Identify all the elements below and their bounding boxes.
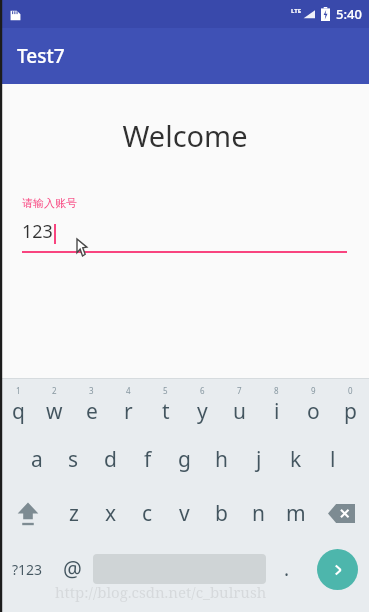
button[interactable]: 1	[0, 382, 36, 429]
staticText: e	[86, 397, 98, 426]
button[interactable]: 3	[73, 382, 110, 429]
button[interactable]: z	[55, 490, 92, 537]
button[interactable]: j	[240, 436, 277, 483]
button[interactable]: g	[166, 436, 203, 483]
staticText: 5	[163, 385, 168, 396]
button[interactable]: Enter	[317, 549, 358, 590]
button[interactable]: c	[129, 490, 166, 537]
staticText: s	[68, 445, 79, 474]
staticText: n	[252, 499, 265, 528]
staticText: 7	[237, 385, 242, 396]
staticText: .	[284, 556, 290, 582]
staticText: u	[233, 397, 246, 426]
staticText: t	[162, 397, 170, 426]
staticText: b	[215, 499, 228, 528]
staticText: d	[104, 445, 117, 474]
staticText: http://blog.csdn.net/c_bulrush	[55, 582, 267, 602]
staticText: r	[124, 397, 133, 426]
staticText: 4	[126, 385, 131, 396]
staticText: i	[274, 397, 280, 426]
button[interactable]: n	[240, 490, 277, 537]
button[interactable]: h	[203, 436, 240, 483]
staticText: z	[69, 499, 79, 528]
staticText: o	[307, 397, 320, 426]
button[interactable]: 7	[221, 382, 258, 429]
staticText: k	[290, 445, 302, 474]
button[interactable]: 4	[110, 382, 147, 429]
staticText: 1	[16, 385, 21, 396]
button[interactable]: 请输入账号	[22, 196, 347, 253]
staticText: m	[286, 499, 306, 528]
button[interactable]: Backspace	[314, 490, 369, 537]
button[interactable]: 5	[147, 382, 184, 429]
button[interactable]: Test7	[0, 28, 369, 84]
button[interactable]: s	[55, 436, 92, 483]
staticText: w	[46, 397, 63, 426]
staticText: 9	[311, 385, 316, 396]
staticText: 6	[200, 385, 205, 396]
button[interactable]: b	[203, 490, 240, 537]
button[interactable]: a	[18, 436, 55, 483]
staticText: a	[31, 445, 43, 474]
staticText: c	[142, 499, 153, 528]
button[interactable]: .	[269, 544, 305, 594]
staticText: LTE	[291, 7, 302, 15]
staticText: 3	[89, 385, 94, 396]
staticText: 请输入账号	[22, 196, 77, 210]
button[interactable]: 8	[258, 382, 295, 429]
button[interactable]: v	[166, 490, 203, 537]
staticText: ?123	[12, 560, 43, 579]
staticText: 5:40	[336, 5, 362, 23]
staticText: j	[256, 445, 262, 474]
staticText: 123	[22, 219, 53, 244]
button[interactable]: x	[92, 490, 129, 537]
button[interactable]: d	[92, 436, 129, 483]
button[interactable]: 0	[332, 382, 369, 429]
button[interactable]: Shift	[0, 490, 55, 537]
staticText: 0	[348, 385, 353, 396]
button[interactable]: 6	[184, 382, 221, 429]
staticText: g	[178, 445, 191, 474]
staticText: p	[344, 397, 357, 426]
staticText: h	[215, 445, 228, 474]
staticText: x	[105, 499, 117, 528]
staticText: 2	[52, 385, 57, 396]
button[interactable]: ?123	[0, 544, 54, 594]
staticText: Test7	[17, 43, 65, 69]
button[interactable]: f	[129, 436, 166, 483]
staticText: 8	[274, 385, 279, 396]
staticText: l	[330, 445, 336, 474]
button[interactable]: @	[54, 544, 90, 594]
button[interactable]: m	[277, 490, 314, 537]
staticText: q	[12, 397, 25, 426]
button[interactable]: k	[277, 436, 314, 483]
button[interactable]: 2	[36, 382, 73, 429]
staticText: v	[179, 499, 190, 528]
staticText: f	[144, 445, 152, 474]
staticText: Welcome	[122, 116, 248, 155]
button[interactable]: 9	[295, 382, 332, 429]
button[interactable]: l	[314, 436, 351, 483]
staticText: @	[63, 555, 82, 584]
staticText: y	[197, 397, 208, 426]
